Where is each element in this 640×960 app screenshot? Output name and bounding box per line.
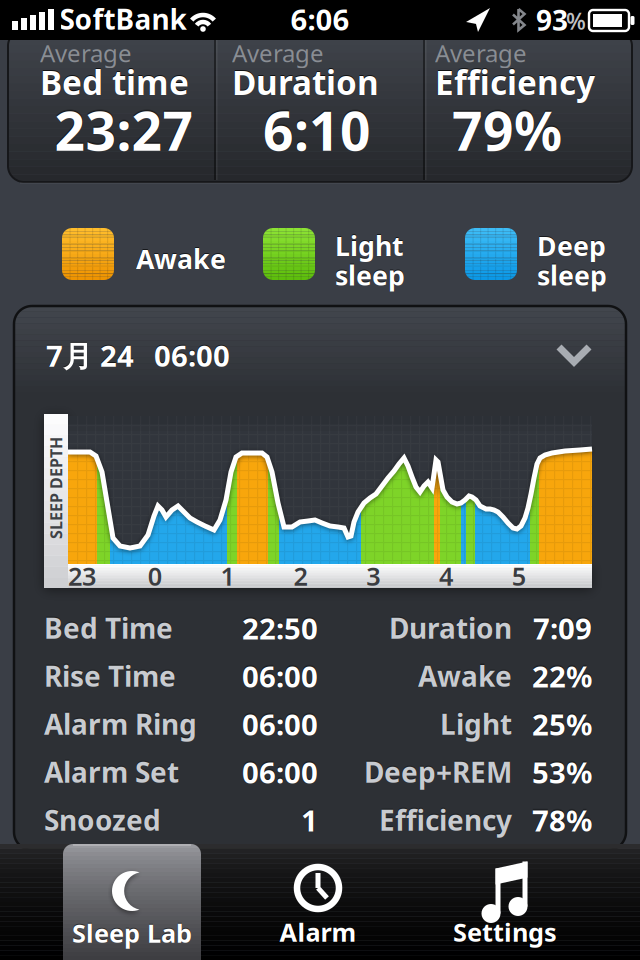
staticText: 3 [366, 559, 380, 593]
staticText: Efficiency [379, 801, 512, 839]
staticText: 06:00 [242, 752, 318, 791]
staticText: 22% [532, 656, 592, 695]
staticText: SoftBank [59, 0, 186, 38]
staticText: Average [232, 37, 324, 69]
staticText: 6:10 [263, 95, 371, 165]
staticText: 1 [221, 559, 235, 593]
button[interactable]: Settings [413, 844, 597, 960]
button[interactable]: Alarm [227, 844, 413, 960]
staticText: 23 [68, 559, 96, 593]
staticText: 2 [293, 559, 307, 593]
staticText: 22:50 [242, 608, 318, 647]
staticText: 5 [512, 559, 526, 593]
staticText: Duration [389, 609, 512, 647]
staticText: Awake [418, 657, 512, 695]
button[interactable]: 7月 24 [14, 306, 626, 396]
staticText: Alarm Set [44, 753, 179, 791]
staticText: 78% [532, 800, 592, 839]
staticText: 0 [148, 559, 162, 593]
staticText: 6:06 [290, 0, 349, 38]
staticText: SLEEP DEPTH [5, 477, 107, 499]
staticText: Snoozed [44, 801, 161, 839]
staticText: Bed Time [44, 609, 173, 647]
staticText: 4 [439, 559, 453, 593]
button[interactable]: Sleep Lab [63, 844, 201, 960]
staticText: Light [440, 705, 512, 743]
staticText: 7月 24 [46, 336, 134, 375]
staticText: 06:00 [242, 656, 318, 695]
staticText: 1 [301, 800, 318, 839]
staticText: 79% [452, 95, 562, 165]
staticText: Average [435, 37, 527, 69]
staticText: Sleep Lab [72, 916, 192, 950]
staticText: 53% [532, 752, 592, 791]
staticText: Efficiency [435, 60, 595, 104]
staticText: 23:27 [54, 95, 193, 165]
staticText: Deep sleep [537, 228, 607, 293]
staticText: % [566, 6, 586, 36]
staticText: 7:09 [533, 608, 592, 647]
staticText: Awake [136, 241, 226, 276]
staticText: Alarm Ring [44, 705, 197, 743]
staticText: 06:00 [154, 336, 230, 375]
staticText: 25% [532, 704, 592, 743]
staticText: 06:00 [242, 704, 318, 743]
staticText: Alarm [279, 915, 356, 949]
staticText: Light sleep [335, 228, 405, 293]
staticText: 93 [536, 1, 568, 39]
staticText: Average [40, 37, 132, 69]
staticText: Settings [453, 915, 557, 949]
staticText: Duration [232, 60, 379, 104]
staticText: Rise Time [44, 657, 176, 695]
staticText: Bed time [40, 60, 189, 104]
staticText: Deep+REM [364, 753, 512, 791]
